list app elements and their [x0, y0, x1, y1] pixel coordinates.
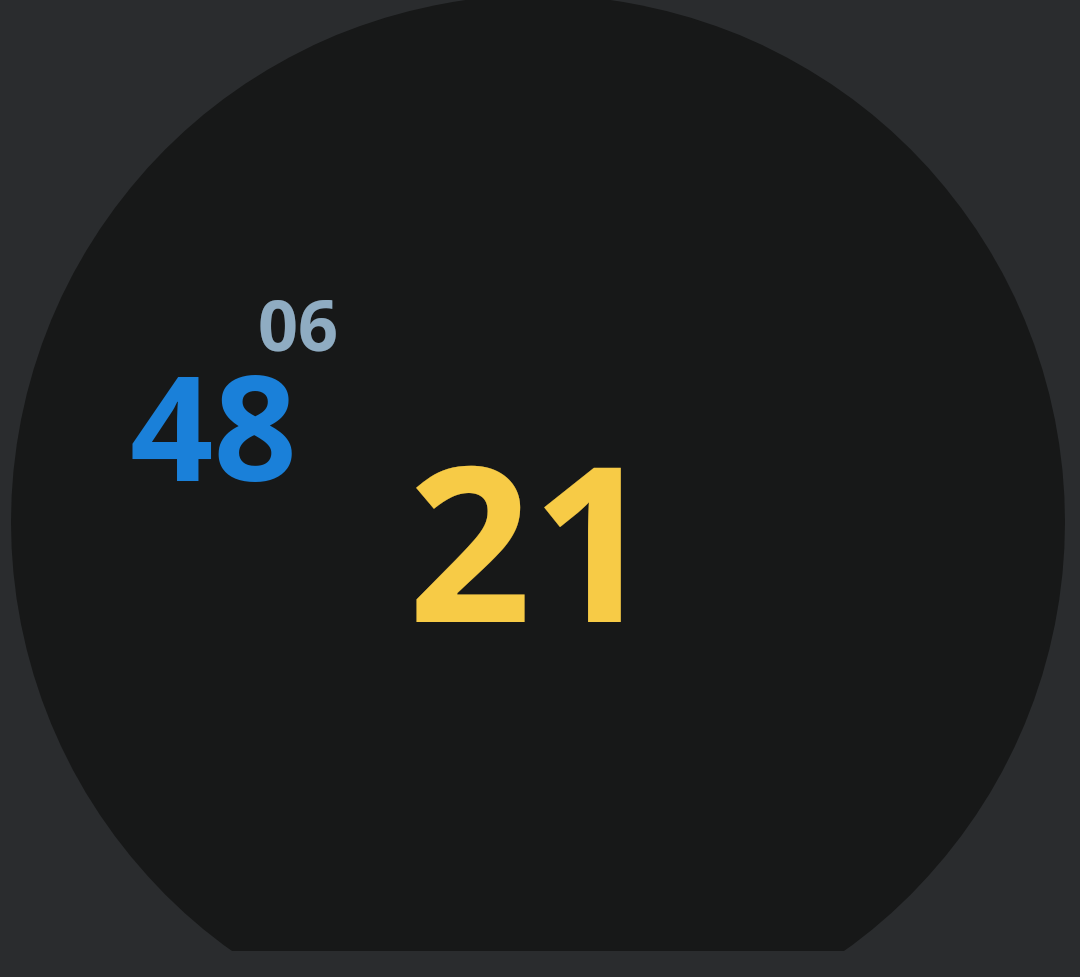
button[interactable]: Minutes 21	[408, 391, 656, 685]
staticText: 06	[258, 276, 339, 371]
button[interactable]: Seconds 06	[258, 276, 339, 371]
button[interactable]: Watch face	[0, 0, 1080, 977]
staticText: 48	[130, 325, 298, 524]
staticText: 21	[408, 391, 656, 685]
button[interactable]: Hours 48	[130, 325, 298, 524]
